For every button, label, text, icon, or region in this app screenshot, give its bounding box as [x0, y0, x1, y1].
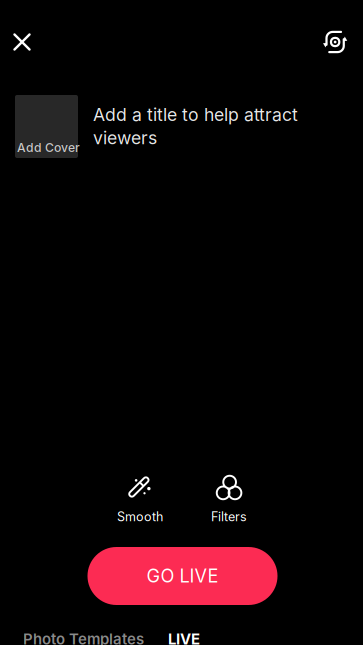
staticText: Add a title to help attract viewers [93, 104, 298, 149]
button[interactable]: Add Cover [0, 64, 363, 158]
button[interactable]: Smooth [109, 468, 171, 531]
staticText: Smooth [117, 509, 163, 524]
staticText: Filters [211, 509, 247, 524]
button[interactable]: GO LIVE [87, 547, 277, 605]
staticText: Add Cover [17, 140, 80, 155]
button[interactable]: Filters [198, 468, 260, 531]
button[interactable]: Flip camera [313, 20, 357, 64]
button[interactable]: Close [0, 20, 44, 64]
staticText: Photo Templates [23, 630, 144, 645]
staticText: LIVE [168, 630, 200, 645]
staticText: GO LIVE [146, 565, 218, 587]
button[interactable]: Photo Templates [11, 625, 156, 645]
button[interactable]: LIVE [156, 625, 212, 645]
